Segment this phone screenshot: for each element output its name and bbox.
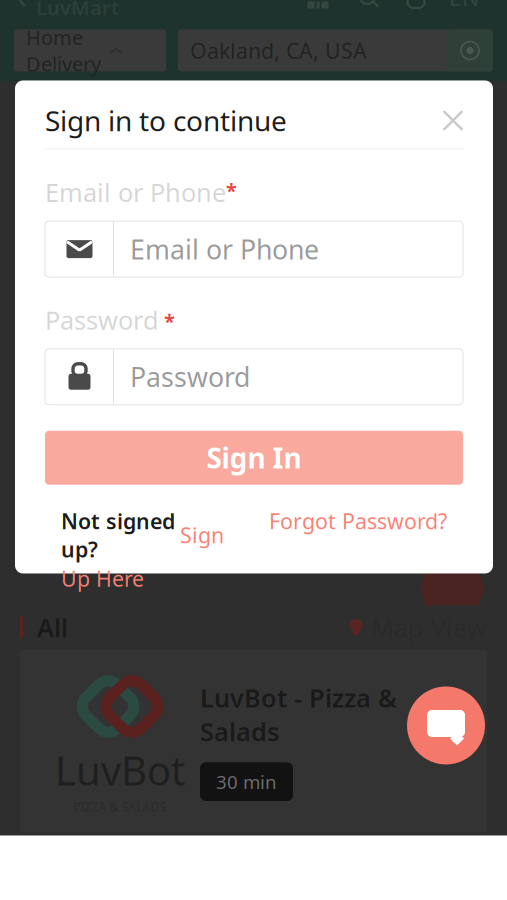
staticText: Password	[45, 303, 159, 337]
staticText: Oakland, CA, USA	[190, 36, 367, 65]
staticText: LuvBot - Pizza & Salads	[200, 681, 397, 748]
staticText: Up Here	[61, 564, 144, 593]
staticText: Home Delivery	[26, 24, 101, 77]
staticText: *	[164, 308, 175, 334]
staticText: 30 min	[216, 769, 277, 794]
staticText: *	[226, 177, 237, 204]
staticText: LuvBot	[55, 743, 185, 797]
staticText: Email or Phone	[130, 231, 319, 267]
button[interactable]: Chat support	[407, 686, 485, 764]
staticText: Not signed up?	[61, 507, 175, 563]
staticText: All	[37, 611, 68, 644]
staticText: LuvMart	[36, 0, 119, 21]
staticText: Email or Phone	[45, 175, 226, 209]
button[interactable]: Forgot Password?	[269, 507, 447, 535]
staticText: Password	[130, 359, 250, 394]
button[interactable]: Close	[431, 98, 475, 142]
staticText: Sign in to continue	[45, 102, 287, 139]
button[interactable]: Sign In	[45, 431, 463, 485]
button[interactable]: Not signed up?	[61, 507, 224, 593]
staticText: Sign In	[206, 439, 301, 476]
staticText: Sign	[180, 521, 224, 549]
staticText: Forgot Password?	[269, 507, 447, 535]
staticText: EN	[449, 0, 479, 12]
